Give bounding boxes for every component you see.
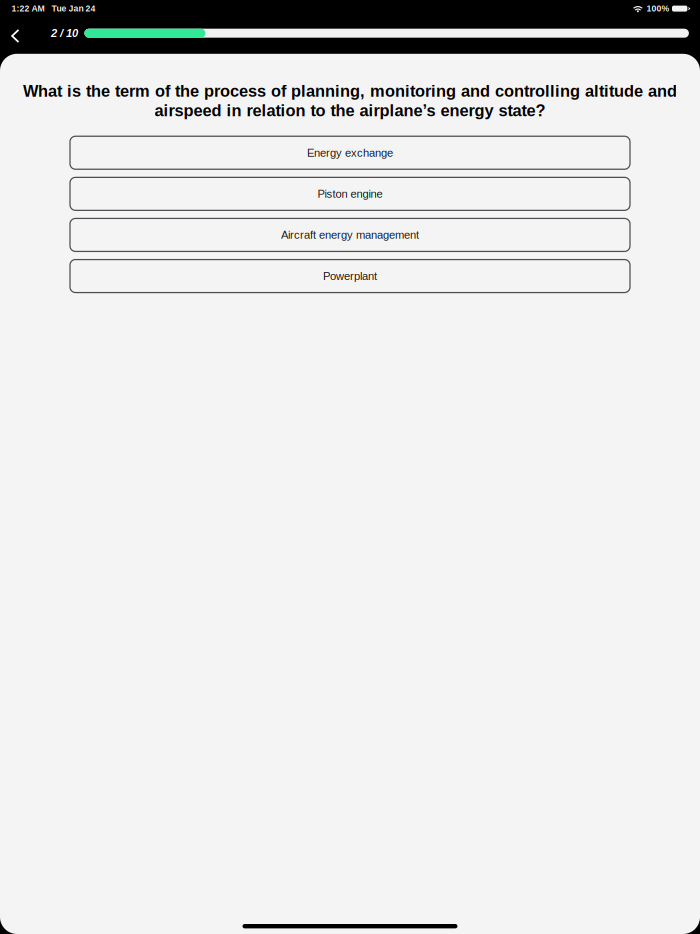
- staticText: Piston engine: [317, 188, 382, 200]
- button[interactable]: Energy exchange: [70, 136, 630, 169]
- button[interactable]: Back: [4, 23, 26, 43]
- staticText: Powerplant: [323, 270, 377, 282]
- staticText: 100%: [647, 4, 670, 13]
- staticText: Aircraft energy management: [281, 229, 419, 241]
- button[interactable]: Aircraft energy management: [70, 218, 630, 251]
- staticText: 2 / 10: [51, 27, 78, 39]
- staticText: airspeed in relation to the airplane’s e…: [154, 101, 545, 120]
- button[interactable]: Powerplant: [70, 259, 630, 292]
- staticText: 1:22 AM: [12, 4, 45, 13]
- staticText: What is the term of the process of plann…: [23, 82, 677, 100]
- button[interactable]: Piston engine: [70, 177, 630, 210]
- staticText: Tue Jan 24: [51, 4, 95, 13]
- staticText: Energy exchange: [307, 146, 393, 159]
